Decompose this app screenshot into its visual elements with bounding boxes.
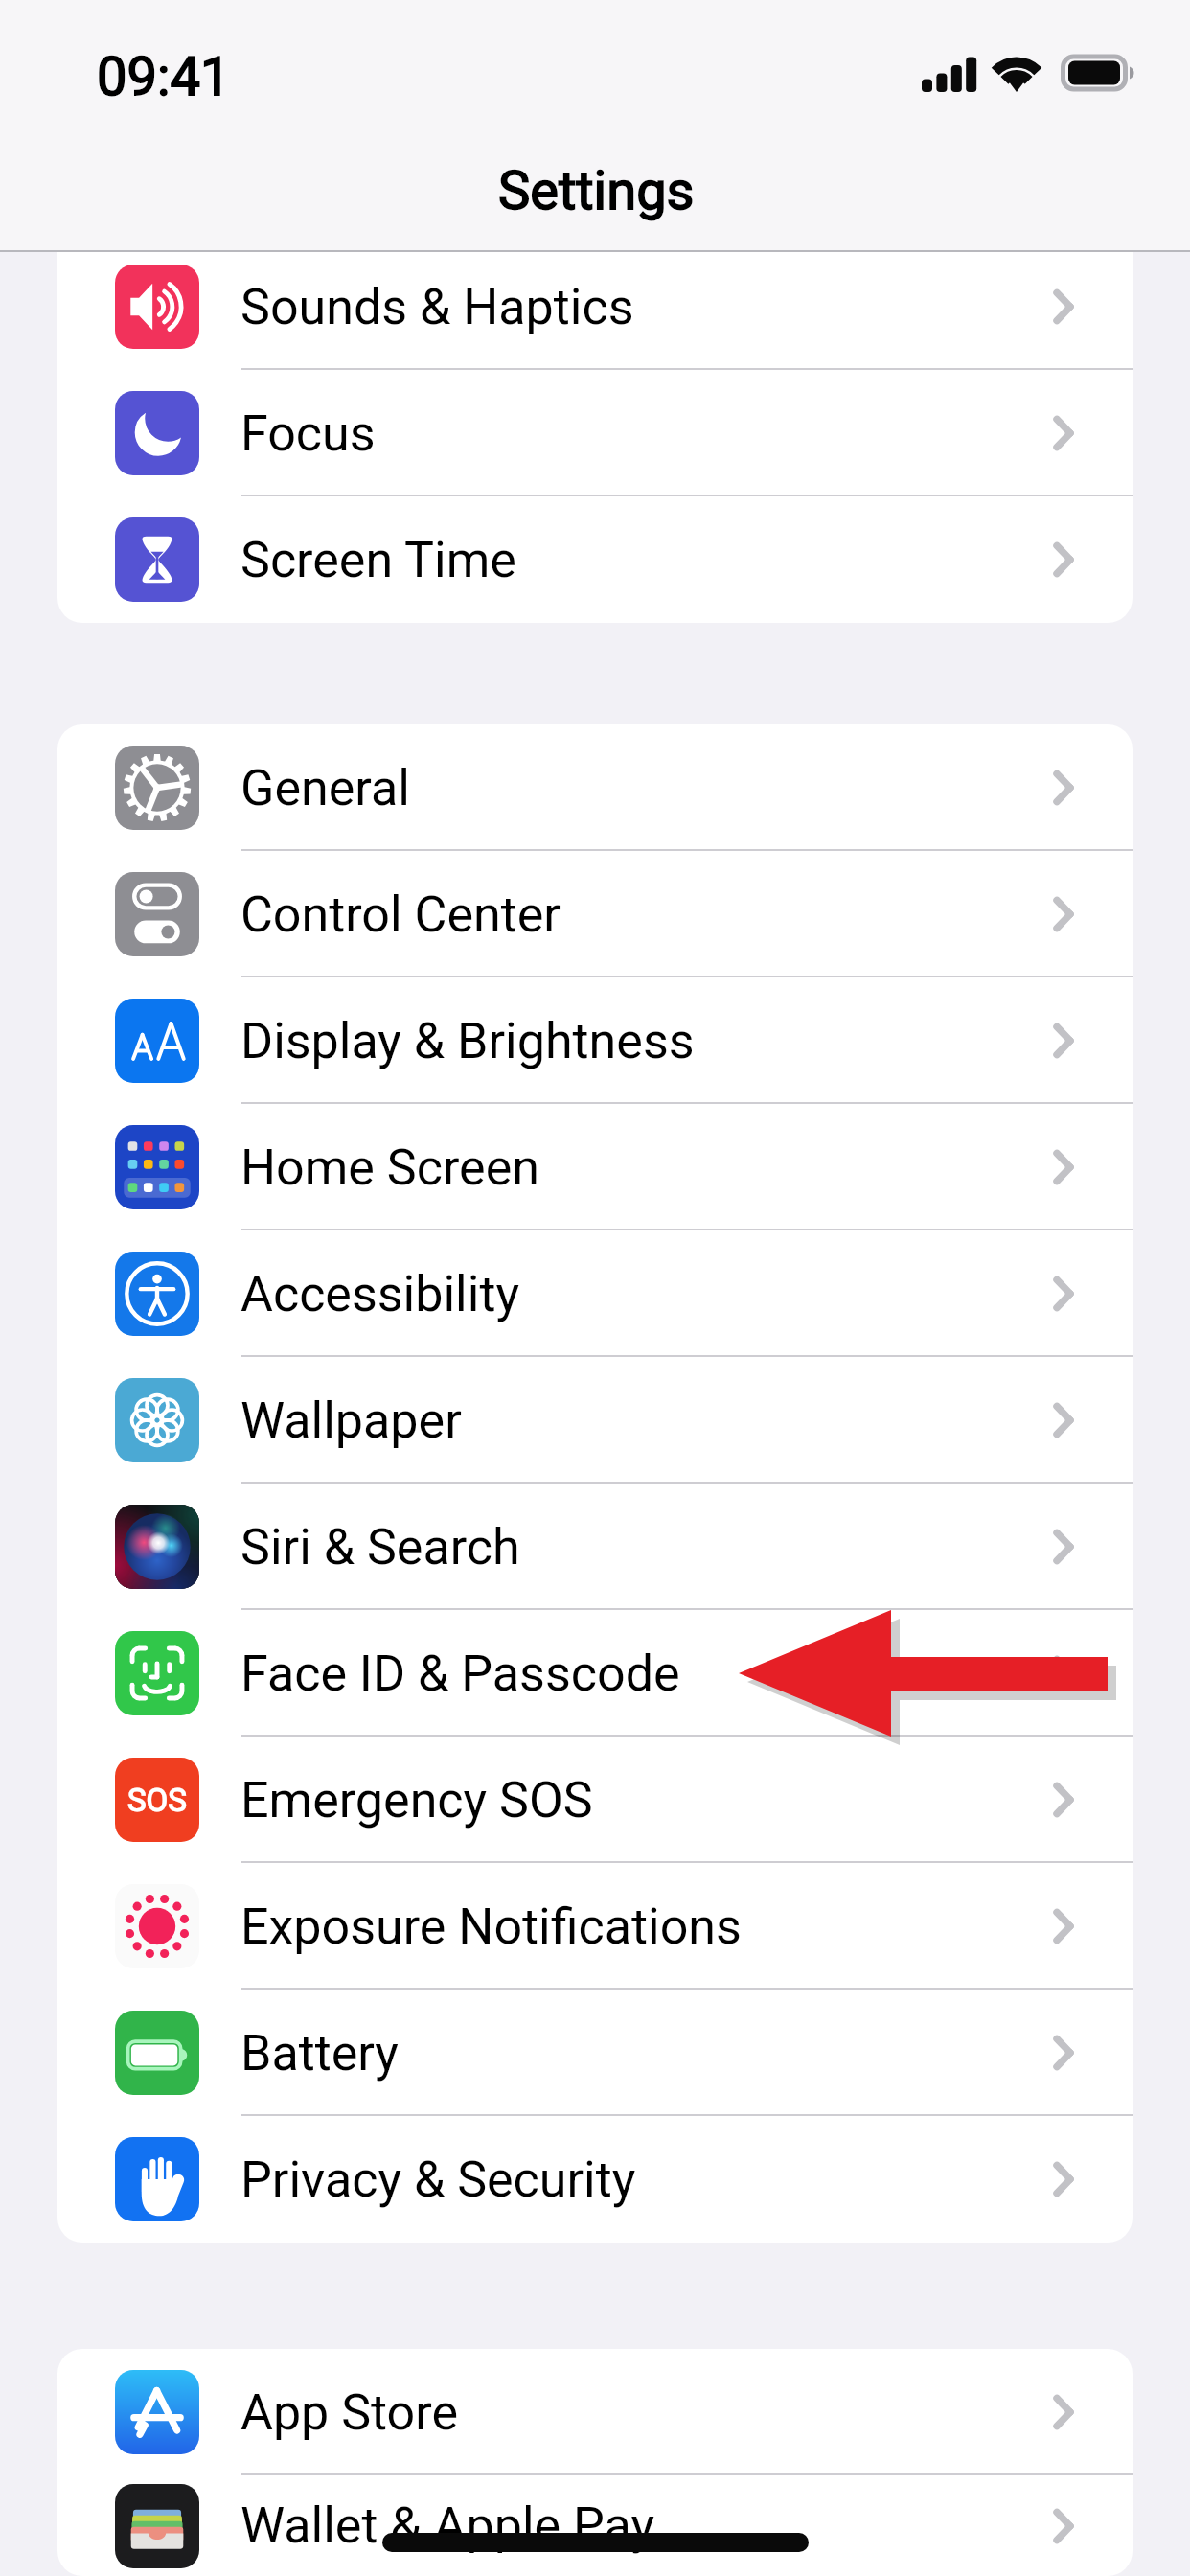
other: Accessibility icon (115, 1252, 199, 1336)
staticText: Wallet & Apple Pay (240, 2496, 655, 2555)
other: Privacy & Security icon (115, 2137, 199, 2221)
other: Home Screen icon (115, 1125, 199, 1209)
button[interactable]: General icon (57, 724, 1133, 851)
staticText: Siri & Search (240, 1518, 520, 1576)
staticText: Display & Brightness (240, 1012, 695, 1070)
other: Wallpaper icon (115, 1378, 199, 1462)
staticText: Wallpaper (240, 1391, 462, 1450)
other: Battery icon (115, 2011, 199, 2095)
staticText: General (240, 759, 410, 817)
staticText: Emergency SOS (240, 1771, 593, 1829)
other: Siri & Search icon (115, 1505, 199, 1589)
staticText: Focus (240, 404, 376, 463)
other: Control Center icon (115, 872, 199, 956)
button[interactable]: Exposure Notifications icon (57, 1863, 1133, 1989)
staticText: Accessibility (240, 1265, 520, 1323)
other: Emergency SOS icon (115, 1758, 199, 1842)
staticText: 09:41 (97, 45, 231, 108)
staticText: SOS (127, 1782, 187, 1819)
button[interactable]: Accessibility icon (57, 1230, 1133, 1357)
button[interactable]: Battery icon (57, 1989, 1133, 2116)
other: App Store icon (115, 2370, 199, 2454)
other: Wallet & Apple Pay icon (115, 2484, 199, 2568)
staticText: App Store (240, 2383, 458, 2442)
button[interactable]: Control Center icon (57, 851, 1133, 977)
staticText: Settings (498, 159, 695, 222)
staticText: Sounds & Haptics (240, 278, 634, 336)
other: Focus icon (115, 391, 199, 475)
button[interactable]: App Store icon (57, 2349, 1133, 2475)
other: Face ID & Passcode icon (115, 1631, 199, 1715)
staticText: Screen Time (240, 531, 516, 589)
button[interactable]: Sounds & Haptics icon (57, 243, 1133, 370)
staticText: Exposure Notifications (240, 1897, 742, 1956)
staticText: Control Center (240, 885, 561, 944)
other: Display & Brightness icon (115, 999, 199, 1083)
button[interactable]: Privacy & Security icon (57, 2116, 1133, 2242)
button[interactable]: Face ID & Passcode icon (57, 1610, 1133, 1736)
staticText: Home Screen (240, 1138, 539, 1197)
staticText: Face ID & Passcode (240, 1644, 680, 1703)
button[interactable]: Focus icon (57, 370, 1133, 496)
staticText: Battery (240, 2024, 399, 2082)
other: Exposure Notifications icon (115, 1884, 199, 1968)
button[interactable]: Screen Time icon (57, 496, 1133, 623)
button[interactable]: Emergency SOS icon (57, 1736, 1133, 1863)
other: Sounds & Haptics icon (115, 264, 199, 349)
button[interactable]: Home Screen icon (57, 1104, 1133, 1230)
button[interactable]: Wallet & Apple Pay icon (57, 2475, 1133, 2576)
other: General icon (115, 746, 199, 830)
button[interactable]: Wallpaper icon (57, 1357, 1133, 1483)
button[interactable]: Siri & Search icon (57, 1483, 1133, 1610)
other: Screen Time icon (115, 517, 199, 602)
button[interactable]: Display & Brightness icon (57, 977, 1133, 1104)
staticText: Privacy & Security (240, 2150, 636, 2209)
